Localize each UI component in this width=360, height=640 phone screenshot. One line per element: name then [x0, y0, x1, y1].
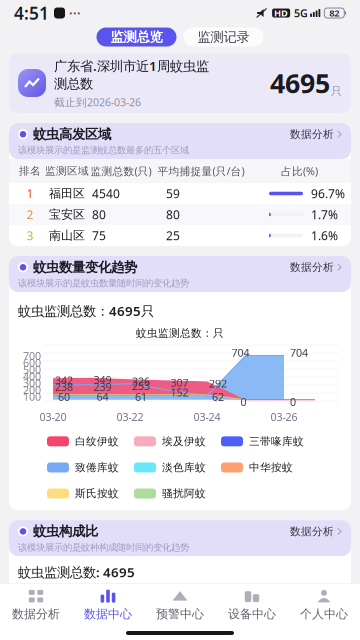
staticText: 数据中心 — [84, 607, 132, 621]
staticText: 400 — [23, 369, 41, 383]
staticText: 4:51 — [14, 1, 49, 24]
staticText: 斯氏按蚊 — [75, 487, 119, 500]
staticText: 03-22 — [116, 410, 143, 424]
staticText: 292 — [209, 376, 227, 391]
staticText: 蚊虫高发区域 — [33, 126, 111, 142]
staticText: 0 — [240, 395, 246, 409]
staticText: 03-26 — [270, 410, 297, 424]
staticText: 数据分析 — [290, 525, 334, 538]
staticText: 排名 — [19, 164, 41, 177]
staticText: 62 — [212, 390, 224, 404]
button[interactable]: 设备中心 — [216, 584, 288, 626]
button[interactable]: 预警中心 — [144, 584, 216, 626]
staticText: 该模块展示的是蚊种构成随时间的变化趋势 — [18, 542, 189, 553]
staticText: 预警中心 — [156, 607, 204, 621]
staticText: 南山区 — [49, 228, 85, 243]
staticText: 只 — [331, 85, 342, 98]
staticText: ••• — [69, 7, 81, 19]
staticText: 淡色库蚊 — [162, 461, 206, 474]
staticText: 82 — [329, 7, 339, 19]
staticText: 监测记录 — [197, 29, 249, 45]
staticText: 4695 — [270, 65, 330, 101]
staticText: 253 — [132, 379, 150, 393]
staticText: 蚊虫监测总数：4695只 — [18, 302, 154, 320]
button[interactable]: 数据分析 — [290, 523, 342, 539]
staticText: 700 — [23, 349, 41, 363]
staticText: 60 — [58, 390, 70, 404]
staticText: 广东省.深圳市近1周蚊虫监 — [54, 57, 209, 75]
staticText: 监测总数(只) — [90, 164, 151, 178]
staticText: 蚊虫构成比 — [33, 523, 98, 540]
staticText: 数据分析 — [290, 128, 334, 141]
button[interactable]: 监测总览 — [96, 27, 176, 46]
button[interactable]: 数据中心 — [72, 584, 144, 626]
staticText: 307 — [170, 375, 188, 390]
staticText: 蚊虫数量变化趋势 — [33, 259, 137, 275]
staticText: 蚊虫监测总数：只 — [136, 327, 224, 340]
staticText: 白纹伊蚊 — [75, 435, 119, 448]
staticText: 80 — [92, 206, 106, 222]
staticText: 25 — [166, 227, 180, 243]
staticText: 福田区 — [49, 186, 85, 201]
staticText: 测总数 — [54, 76, 93, 92]
staticText: 蚊虫监测总数: 4695 — [18, 563, 135, 581]
staticText: 238 — [55, 380, 73, 394]
button[interactable]: 数据分析 — [0, 584, 72, 626]
button[interactable]: 数据分析 — [290, 259, 342, 275]
staticText: 326 — [132, 374, 150, 388]
staticText: 中华按蚊 — [249, 461, 293, 474]
staticText: 342 — [55, 373, 73, 387]
staticText: 500 — [23, 362, 41, 377]
staticText: 80 — [166, 206, 180, 222]
staticText: 设备中心 — [228, 607, 276, 621]
staticText: 1.7% — [311, 206, 338, 222]
staticText: 1.6% — [311, 227, 338, 243]
staticText: 骚扰阿蚊 — [162, 487, 206, 500]
staticText: 64 — [96, 390, 108, 404]
staticText: 0 — [290, 395, 296, 409]
staticText: 占比(%) — [281, 164, 318, 178]
staticText: 61 — [135, 390, 147, 404]
staticText: 600 — [23, 356, 41, 370]
staticText: 个人中心 — [300, 607, 348, 621]
staticText: 埃及伊蚊 — [162, 435, 206, 448]
staticText: 03-20 — [39, 410, 66, 424]
staticText: 数据分析 — [12, 607, 60, 621]
staticText: 三带喙库蚊 — [249, 435, 304, 448]
staticText: 300 — [23, 376, 41, 390]
staticText: 3 — [26, 227, 33, 243]
staticText: 数据分析 — [290, 261, 334, 274]
staticText: 200 — [23, 383, 41, 397]
staticText: 宝安区 — [49, 207, 85, 222]
staticText: 349 — [93, 373, 111, 387]
staticText: 监测总览 — [110, 29, 162, 45]
button[interactable]: 数据分析 — [290, 126, 342, 142]
staticText: 96.7% — [311, 185, 345, 201]
staticText: 239 — [93, 380, 111, 394]
staticText: 平均捕捉量(只/台) — [157, 164, 244, 178]
staticText: 5G — [294, 6, 308, 20]
staticText: 致倦库蚊 — [75, 461, 119, 474]
staticText: 75 — [92, 227, 106, 243]
staticText: 4540 — [92, 185, 120, 201]
button[interactable]: 监测记录 — [183, 27, 263, 46]
staticText: 监测区域 — [45, 164, 89, 177]
staticText: 704 — [231, 345, 249, 360]
staticText: 704 — [290, 345, 308, 360]
staticText: 59 — [166, 185, 180, 201]
staticText: 2 — [26, 206, 33, 222]
staticText: 该模块展示的是监测蚊总数最多的五个区域 — [18, 144, 189, 156]
staticText: 截止到2026-03-26 — [54, 95, 141, 109]
staticText: 该模块展示的是蚊虫数量随时间的变化趋势 — [18, 277, 189, 289]
staticText: 152 — [170, 385, 188, 399]
staticText: 03-24 — [193, 410, 220, 424]
staticText: 1 — [26, 185, 33, 201]
staticText: HD — [274, 7, 288, 19]
staticText: 100 — [23, 390, 41, 404]
button[interactable]: 个人中心 — [288, 584, 360, 626]
